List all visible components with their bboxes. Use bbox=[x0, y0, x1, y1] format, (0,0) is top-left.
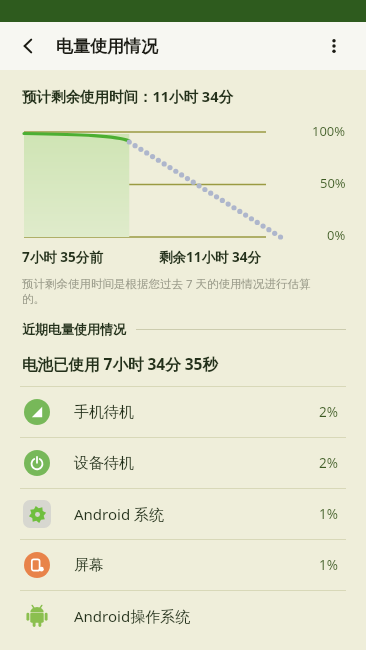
staticText: 预计剩余使用时间是根据您过去 7 天的使用情况进行估算 的。 bbox=[22, 276, 311, 307]
staticText: 屏幕 bbox=[74, 556, 104, 575]
staticText: 2% bbox=[319, 403, 338, 421]
staticText: Android 系统 bbox=[74, 504, 165, 524]
staticText: 预计剩余使用时间：11小时 34分 bbox=[22, 86, 233, 106]
staticText: Android操作系统 bbox=[74, 606, 191, 626]
staticText: 2% bbox=[319, 454, 338, 472]
staticText: 电池已使用 7小时 34分 35秒 bbox=[22, 353, 218, 374]
button[interactable]: Back bbox=[8, 26, 48, 66]
staticText: 1% bbox=[319, 505, 338, 523]
staticText: 1% bbox=[319, 556, 338, 574]
button[interactable]: More options bbox=[314, 26, 354, 66]
staticText: 电量使用情况 bbox=[56, 36, 158, 57]
staticText: 0% bbox=[327, 226, 346, 244]
staticText: 50% bbox=[320, 174, 346, 192]
staticText: 手机待机 bbox=[74, 403, 134, 422]
staticText: 设备待机 bbox=[74, 454, 134, 473]
button[interactable]: 屏幕 bbox=[0, 540, 366, 590]
staticText: 7小时 35分前 bbox=[22, 248, 103, 266]
button[interactable]: Android操作系统 bbox=[0, 591, 366, 641]
button[interactable]: Android 系统 bbox=[0, 489, 366, 539]
staticText: 近期电量使用情况 bbox=[22, 321, 126, 337]
button[interactable]: 设备待机 bbox=[0, 438, 366, 488]
staticText: 100% bbox=[312, 122, 346, 140]
button[interactable]: 手机待机 bbox=[0, 387, 366, 437]
staticText: 剩余11小时 34分 bbox=[159, 248, 261, 266]
